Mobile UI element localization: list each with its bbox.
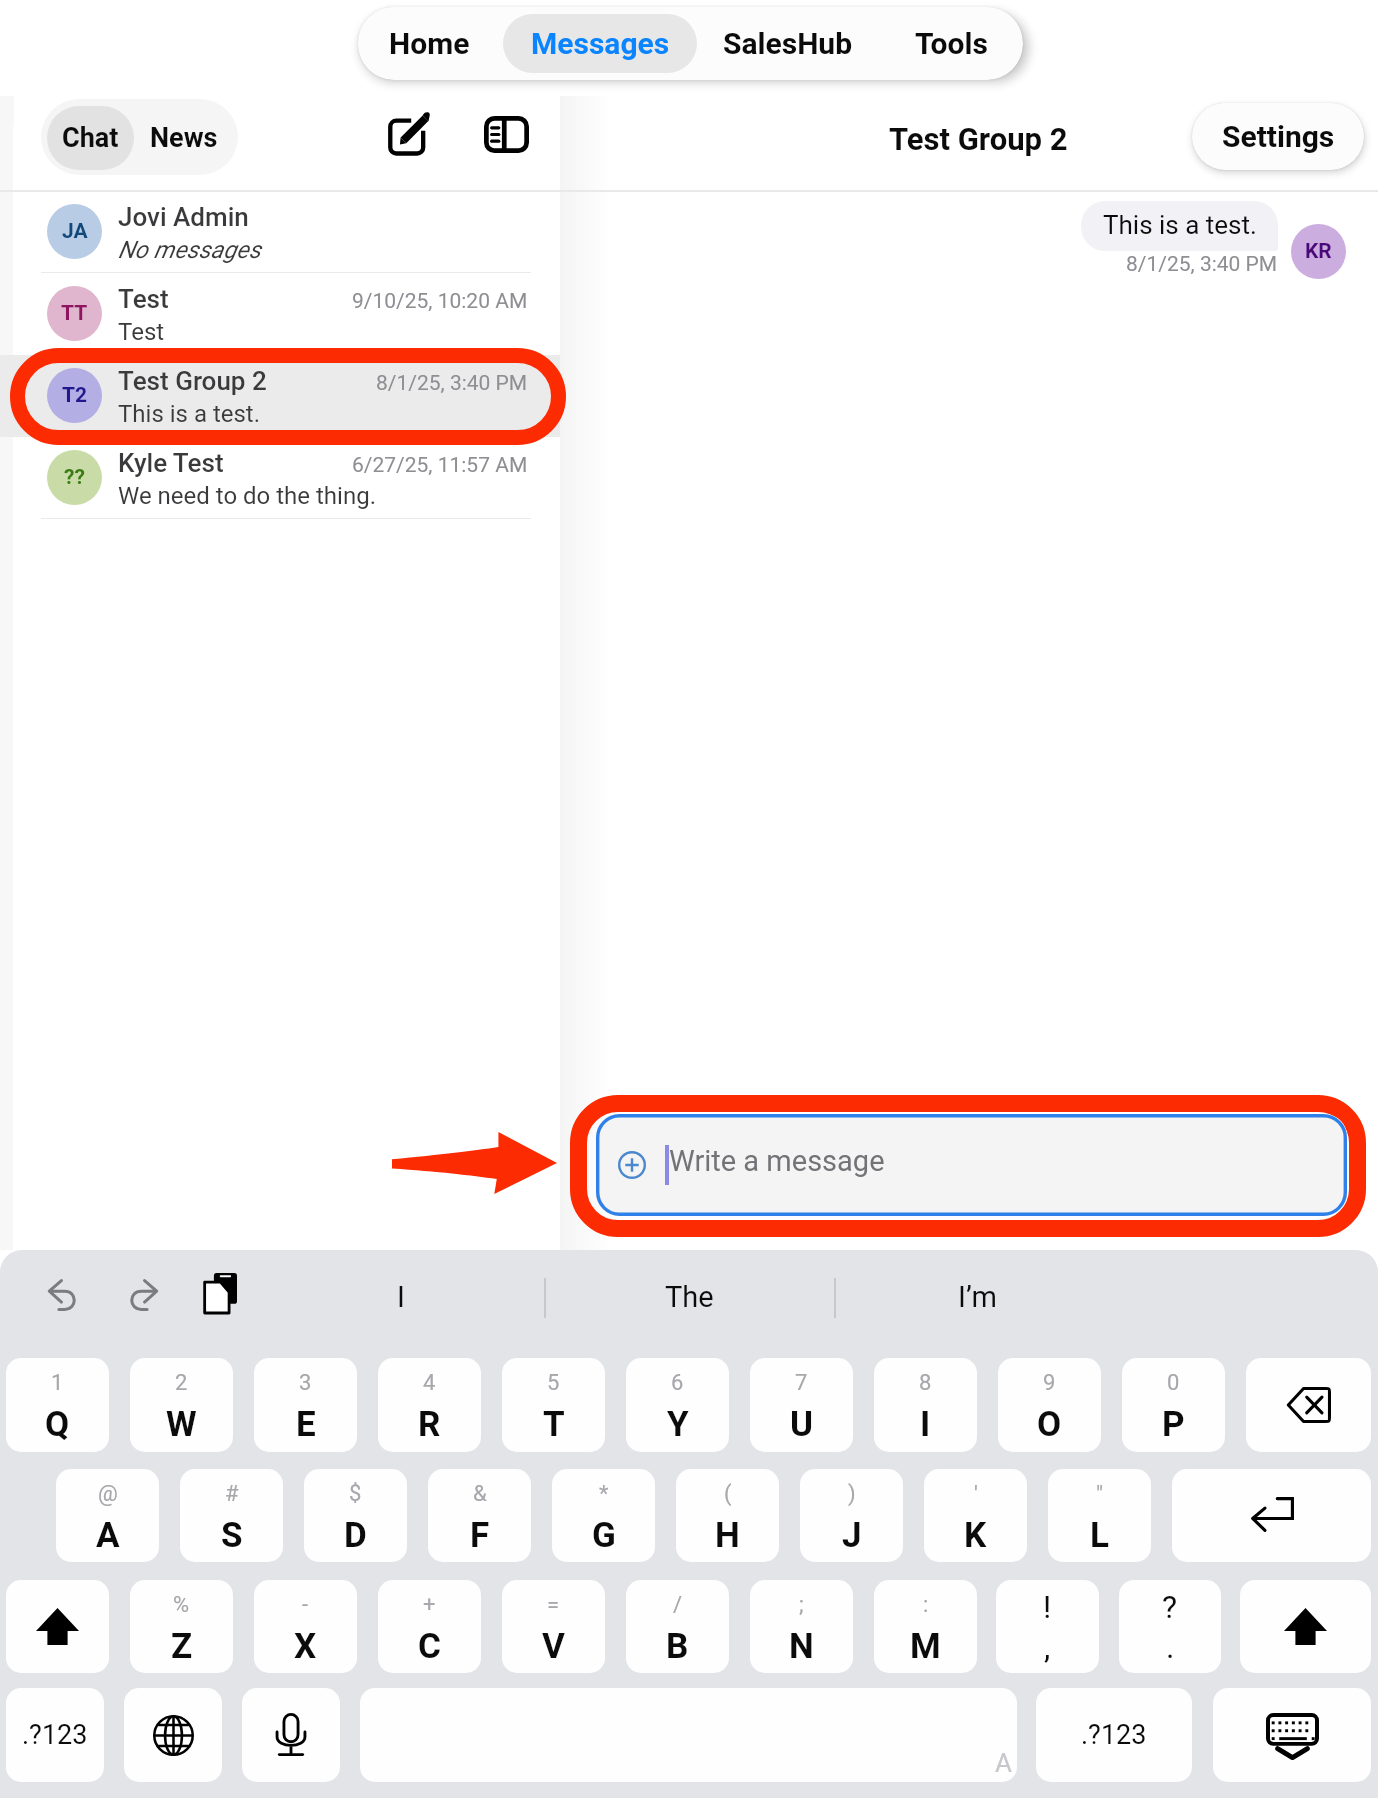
button[interactable]: )	[800, 1469, 903, 1562]
button[interactable]: Undo	[32, 1263, 96, 1327]
staticText: Test Group 2	[889, 121, 1068, 157]
button[interactable]: Shift	[6, 1580, 109, 1673]
staticText: .?123	[1081, 1719, 1147, 1751]
button[interactable]: @	[56, 1469, 159, 1562]
button[interactable]: (	[676, 1469, 779, 1562]
button[interactable]: Clipboard	[188, 1261, 252, 1325]
button[interactable]: Split view	[476, 104, 536, 164]
button[interactable]: '	[924, 1469, 1027, 1562]
staticText: 6	[671, 1370, 684, 1396]
staticText: .?123	[22, 1719, 88, 1751]
button[interactable]: News	[136, 106, 232, 170]
button[interactable]: 2	[130, 1358, 233, 1452]
staticText: /	[673, 1592, 683, 1618]
button[interactable]: T2	[0, 355, 560, 437]
staticText: 9	[1043, 1370, 1056, 1396]
staticText: :	[923, 1592, 929, 1618]
button[interactable]: /	[626, 1580, 729, 1673]
staticText: $	[349, 1481, 362, 1507]
staticText: Z	[171, 1626, 193, 1667]
button[interactable]: *	[552, 1469, 655, 1562]
button[interactable]: The	[578, 1270, 800, 1324]
button[interactable]: 1	[6, 1358, 109, 1452]
staticText: M	[910, 1626, 941, 1667]
staticText: T	[543, 1404, 565, 1445]
button[interactable]: -	[254, 1580, 357, 1673]
button[interactable]: +	[378, 1580, 481, 1673]
button[interactable]: 9	[998, 1358, 1101, 1452]
staticText: Test	[118, 284, 169, 314]
staticText: P	[1162, 1404, 1185, 1445]
button[interactable]: ?	[1119, 1580, 1221, 1673]
staticText: %	[173, 1592, 190, 1618]
button[interactable]: Backspace	[1246, 1358, 1371, 1452]
button[interactable]: TT	[0, 273, 560, 355]
staticText: ,	[1044, 1628, 1051, 1666]
button[interactable]: Tools	[879, 14, 1023, 73]
staticText: '	[974, 1481, 978, 1507]
staticText: Y	[667, 1404, 689, 1445]
staticText: TT	[61, 301, 88, 326]
button[interactable]: 0	[1122, 1358, 1225, 1452]
button[interactable]: Shift	[1240, 1580, 1371, 1673]
button[interactable]: #	[180, 1469, 283, 1562]
button[interactable]: New message	[374, 104, 434, 164]
button[interactable]: =	[502, 1580, 605, 1673]
button[interactable]: Voice input	[242, 1688, 340, 1782]
staticText: No messages	[118, 236, 261, 264]
button[interactable]: ??	[0, 437, 560, 519]
button[interactable]: Write a message	[596, 1114, 1347, 1216]
button[interactable]: Enter	[1172, 1469, 1371, 1562]
staticText: Test Group 2	[118, 366, 267, 396]
button[interactable]: Redo	[110, 1263, 174, 1327]
button[interactable]: Hide keyboard	[1213, 1688, 1371, 1782]
staticText: 9/10/25, 10:20 AM	[352, 289, 528, 314]
staticText: O	[1037, 1404, 1062, 1445]
button[interactable]: Messages	[503, 14, 697, 73]
button[interactable]: I	[290, 1270, 512, 1324]
button[interactable]: Change language	[124, 1688, 222, 1782]
staticText: -	[302, 1592, 309, 1618]
button[interactable]: JA	[0, 191, 560, 273]
staticText: C	[418, 1626, 441, 1667]
button[interactable]: .?123	[1036, 1688, 1192, 1782]
button[interactable]: .?123	[6, 1688, 104, 1782]
staticText: 5	[547, 1370, 560, 1396]
staticText: (	[724, 1481, 732, 1507]
staticText: F	[470, 1515, 490, 1556]
button[interactable]: ;	[750, 1580, 853, 1673]
button[interactable]: I’m	[866, 1270, 1088, 1324]
staticText: @	[98, 1481, 118, 1507]
staticText: L	[1090, 1515, 1109, 1556]
staticText: A	[96, 1515, 120, 1556]
button[interactable]: Chat	[47, 106, 134, 170]
button[interactable]: Home	[358, 14, 502, 73]
button[interactable]: 6	[626, 1358, 729, 1452]
button[interactable]: %	[130, 1580, 233, 1673]
button[interactable]: 3	[254, 1358, 357, 1452]
staticText: &	[473, 1481, 487, 1507]
button[interactable]: 8	[874, 1358, 977, 1452]
staticText: I	[397, 1280, 405, 1314]
button[interactable]: SalesHub	[697, 14, 879, 73]
staticText: B	[666, 1626, 689, 1667]
staticText: R	[418, 1404, 441, 1445]
staticText: T2	[62, 383, 88, 408]
staticText: Test	[118, 318, 165, 346]
button[interactable]: 5	[502, 1358, 605, 1452]
staticText: U	[790, 1404, 814, 1445]
button[interactable]: !	[996, 1580, 1099, 1673]
button[interactable]: "	[1048, 1469, 1151, 1562]
button[interactable]: $	[304, 1469, 407, 1562]
button[interactable]: Settings	[1192, 103, 1364, 170]
button[interactable]: 4	[378, 1358, 481, 1452]
staticText: N	[789, 1626, 814, 1667]
button[interactable]: :	[874, 1580, 977, 1673]
staticText: News	[150, 122, 218, 154]
staticText: #	[225, 1481, 239, 1507]
button[interactable]: &	[428, 1469, 531, 1562]
staticText: ;	[799, 1592, 804, 1618]
staticText: I’m	[958, 1280, 997, 1314]
button[interactable]: 7	[750, 1358, 853, 1452]
